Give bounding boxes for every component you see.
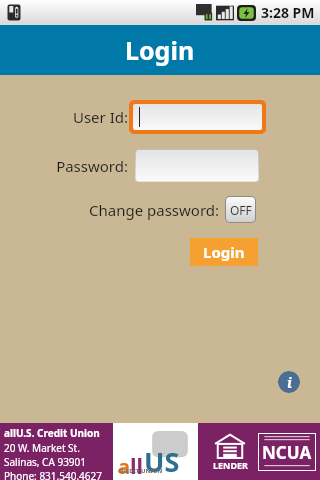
staticText: Password: <box>56 156 128 176</box>
button[interactable]: NCUA <box>258 433 316 471</box>
staticText: NCUA <box>262 441 312 464</box>
staticText: i <box>287 373 292 392</box>
staticText: 3:28 PM <box>261 3 315 22</box>
staticText: Change password: <box>89 200 220 220</box>
staticText: ll <box>130 450 144 480</box>
staticText: OFF <box>230 202 252 218</box>
staticText: a <box>118 453 130 480</box>
button[interactable]: Login <box>190 238 258 266</box>
staticText: Login <box>125 33 195 67</box>
staticText: US <box>144 443 180 480</box>
staticText: Salinas, CA 93901 <box>4 455 87 469</box>
staticText: 20 W. Market St. <box>4 441 80 455</box>
staticText: CREDIT UNION <box>118 467 163 475</box>
button[interactable] <box>136 150 258 181</box>
staticText: LENDER <box>213 459 248 471</box>
button[interactable]: Information <box>278 371 300 393</box>
staticText: User Id: <box>72 107 128 127</box>
button[interactable] <box>133 104 262 130</box>
staticText: allU.S. Credit Union <box>4 426 100 440</box>
staticText: Phone: 831.540.4627 <box>4 469 102 480</box>
button[interactable]: OFF <box>226 197 255 222</box>
button[interactable]: Equal Housing Lender <box>206 433 254 471</box>
staticText: Login <box>203 242 245 262</box>
